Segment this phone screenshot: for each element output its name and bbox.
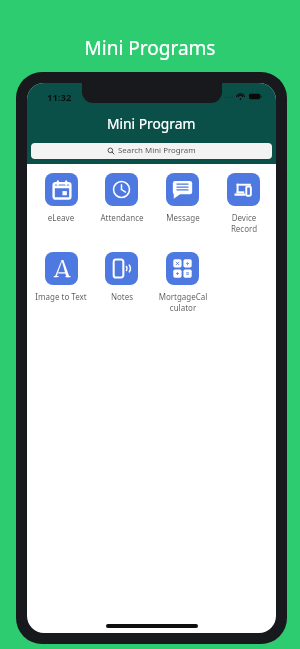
staticText: 11:32 [47, 91, 72, 104]
button[interactable]: Image to Text [31, 252, 91, 302]
button[interactable]: Device Record [213, 173, 274, 234]
button[interactable]: Attendance [91, 173, 152, 223]
staticText: Mini Program [107, 114, 196, 133]
staticText: Message [155, 212, 211, 223]
staticText: Image to Text [33, 291, 89, 302]
staticText: Device Record [216, 212, 272, 234]
staticText: Notes [94, 291, 150, 302]
button[interactable]: Notes [91, 252, 152, 302]
staticText: Mini Programs [0, 35, 300, 61]
staticText: Search Mini Program [118, 145, 196, 156]
button[interactable]: eLeave [31, 173, 91, 223]
button[interactable]: Message [152, 173, 213, 223]
button[interactable]: MortgageCal culator [152, 252, 213, 313]
button[interactable]: Search Mini Program [31, 143, 272, 159]
staticText: eLeave [33, 212, 89, 223]
staticText: Attendance [94, 212, 150, 223]
staticText: MortgageCal culator [155, 291, 211, 313]
